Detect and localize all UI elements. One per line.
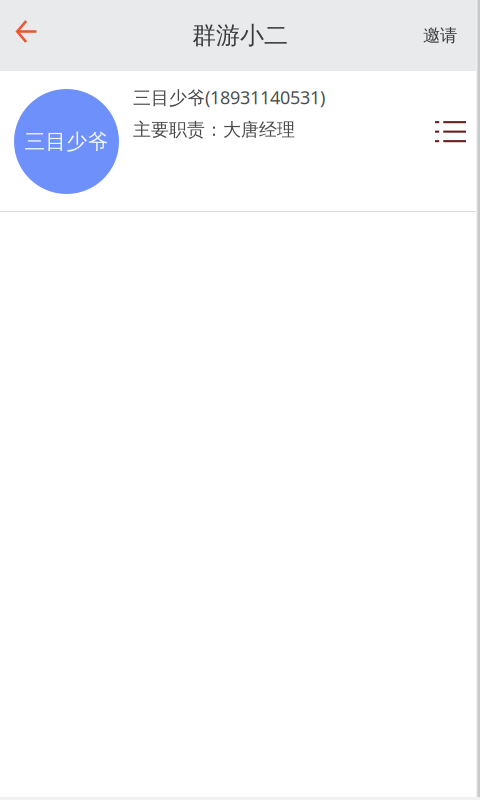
button[interactable]: 查看职责 [421, 107, 480, 156]
staticText: 邀请 [423, 25, 457, 46]
button[interactable]: 邀请 [400, 0, 480, 71]
staticText: 三目少爷 [24, 128, 108, 154]
staticText: 群游小二 [192, 20, 288, 51]
staticText: 三目少爷(18931140531) [133, 85, 325, 109]
button[interactable]: 返回 [0, 0, 62, 71]
button[interactable]: 三目少爷 [0, 71, 480, 211]
staticText: 主要职责：大唐经理 [133, 118, 295, 141]
